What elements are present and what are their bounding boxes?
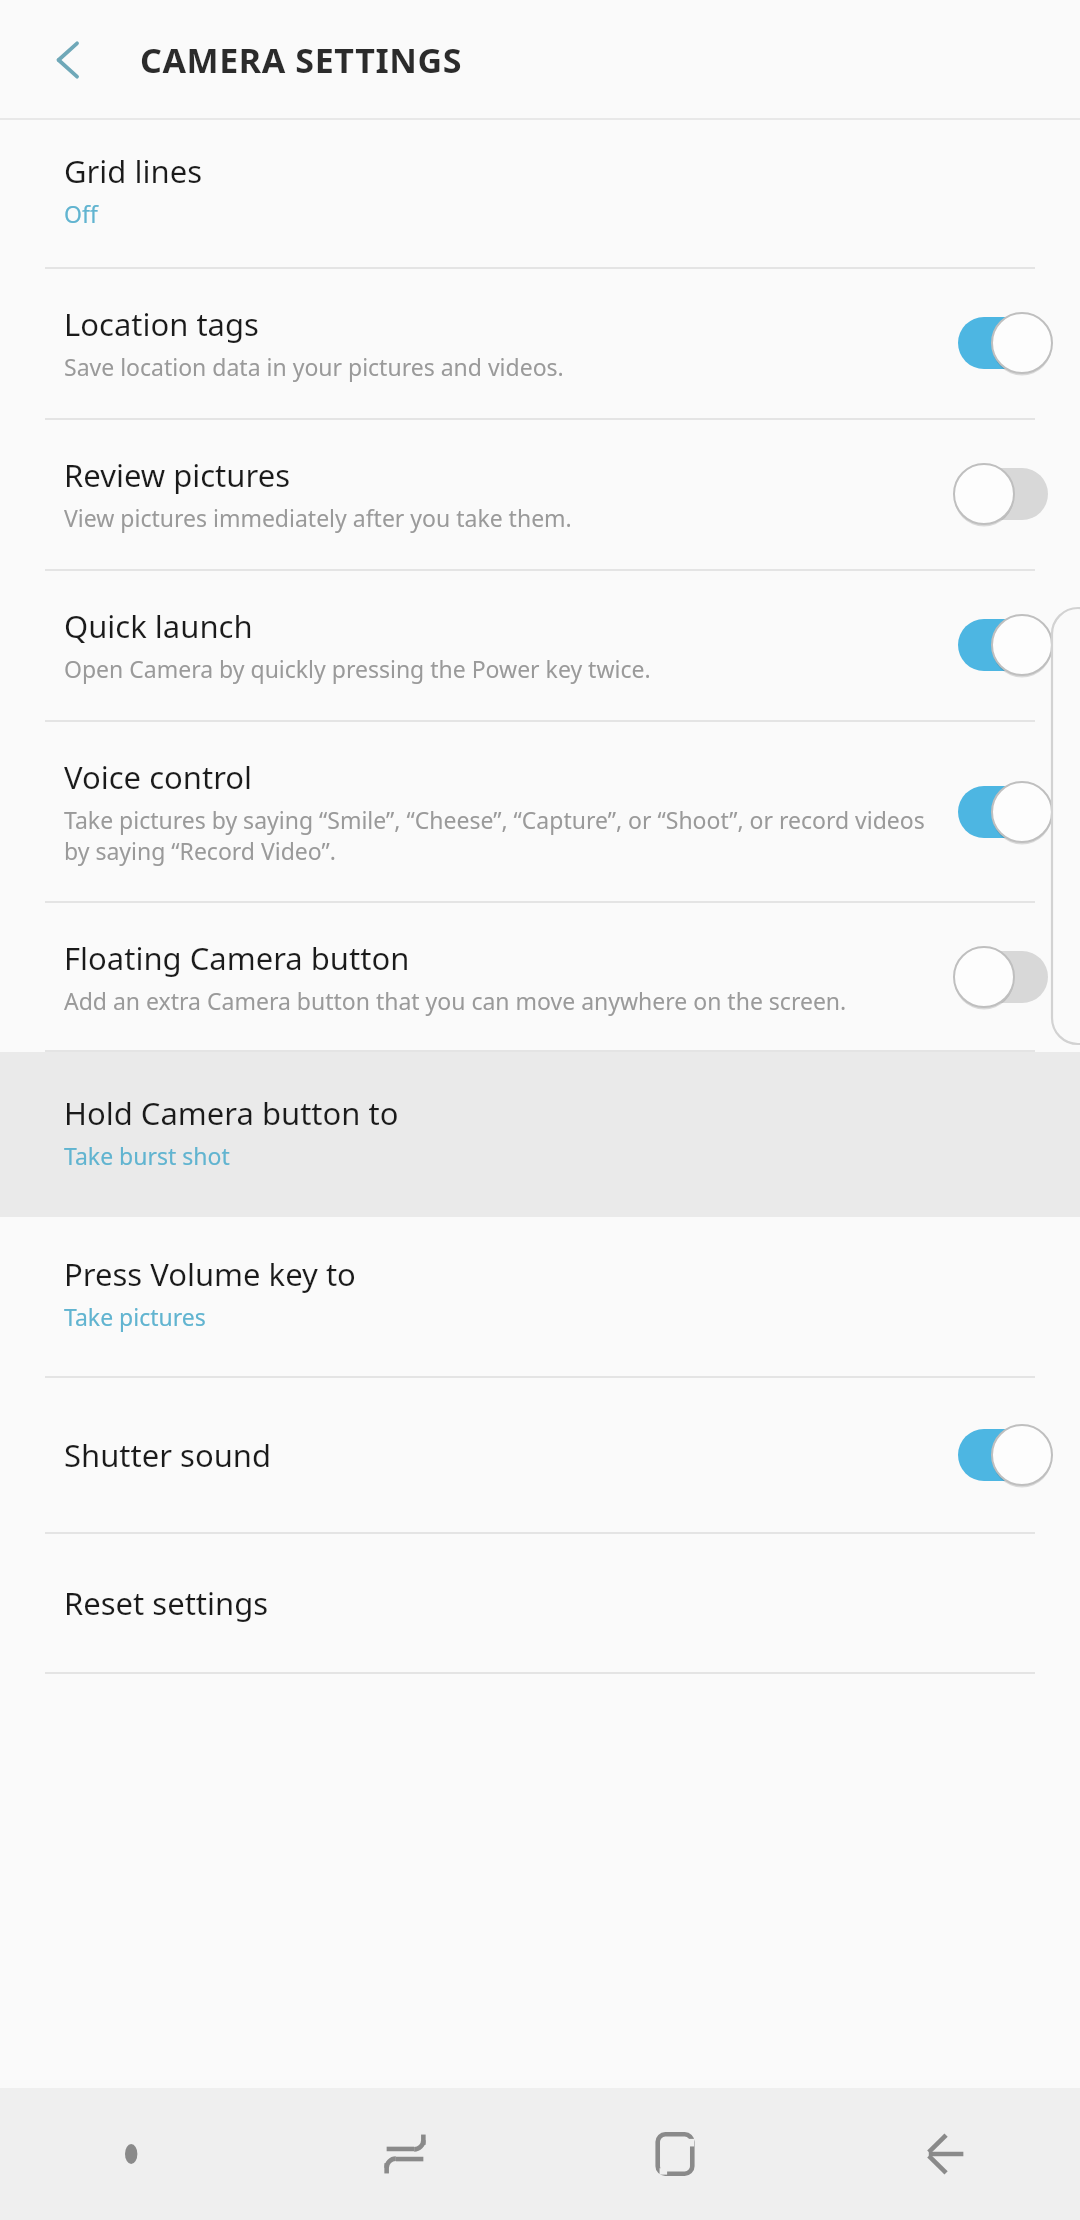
staticText: Take burst shot xyxy=(64,1140,230,1171)
staticText: Reset settings xyxy=(64,1582,269,1624)
staticText: View pictures immediately after you take… xyxy=(64,502,572,533)
staticText: Press Volume key to xyxy=(64,1253,356,1295)
staticText: Grid lines xyxy=(64,150,202,192)
staticText: Hold Camera button to xyxy=(64,1092,399,1134)
staticText: Location tags xyxy=(64,303,259,345)
button[interactable]: Shutter sound toggle xyxy=(954,1422,1052,1488)
staticText: Shutter sound xyxy=(64,1434,272,1476)
button[interactable]: Home xyxy=(627,2106,723,2202)
staticText: Quick launch xyxy=(64,605,253,647)
button[interactable]: Review pictures xyxy=(0,420,1080,569)
button[interactable]: Location tags xyxy=(0,269,1080,418)
button[interactable]: Keyboard indicator xyxy=(100,2119,170,2189)
button[interactable]: Floating Camera button xyxy=(0,903,1080,1050)
staticText: Review pictures xyxy=(64,454,290,496)
button[interactable]: Press Volume key to xyxy=(0,1217,1080,1376)
staticText: Add an extra Camera button that you can … xyxy=(64,985,847,1016)
button[interactable]: Voice control xyxy=(0,722,1080,901)
button[interactable]: Reset settings xyxy=(0,1534,1080,1672)
staticText: Take pictures xyxy=(64,1301,206,1332)
staticText: Open Camera by quickly pressing the Powe… xyxy=(64,653,651,684)
button[interactable]: Back xyxy=(30,20,110,100)
staticText: Save location data in your pictures and … xyxy=(64,351,564,382)
button[interactable]: Quick launch xyxy=(0,571,1080,720)
button[interactable]: Shutter sound xyxy=(0,1378,1080,1532)
staticText: CAMERA SETTINGS xyxy=(140,37,463,83)
button[interactable]: Voice control toggle xyxy=(954,779,1052,845)
button[interactable]: Floating Camera button toggle xyxy=(954,944,1052,1010)
button[interactable]: Recents xyxy=(357,2106,453,2202)
staticText: Voice control xyxy=(64,756,253,798)
staticText: Off xyxy=(64,198,98,229)
staticText: Floating Camera button xyxy=(64,937,410,979)
staticText: Take pictures by saying “Smile”, “Cheese… xyxy=(64,804,938,867)
button[interactable]: Hold Camera button to xyxy=(0,1052,1080,1217)
button[interactable]: Back xyxy=(897,2106,993,2202)
button[interactable]: Grid lines xyxy=(0,120,1080,267)
button[interactable]: Location tags toggle xyxy=(954,310,1052,376)
button[interactable]: Quick launch toggle xyxy=(954,612,1052,678)
button[interactable]: Review pictures toggle xyxy=(954,461,1052,527)
